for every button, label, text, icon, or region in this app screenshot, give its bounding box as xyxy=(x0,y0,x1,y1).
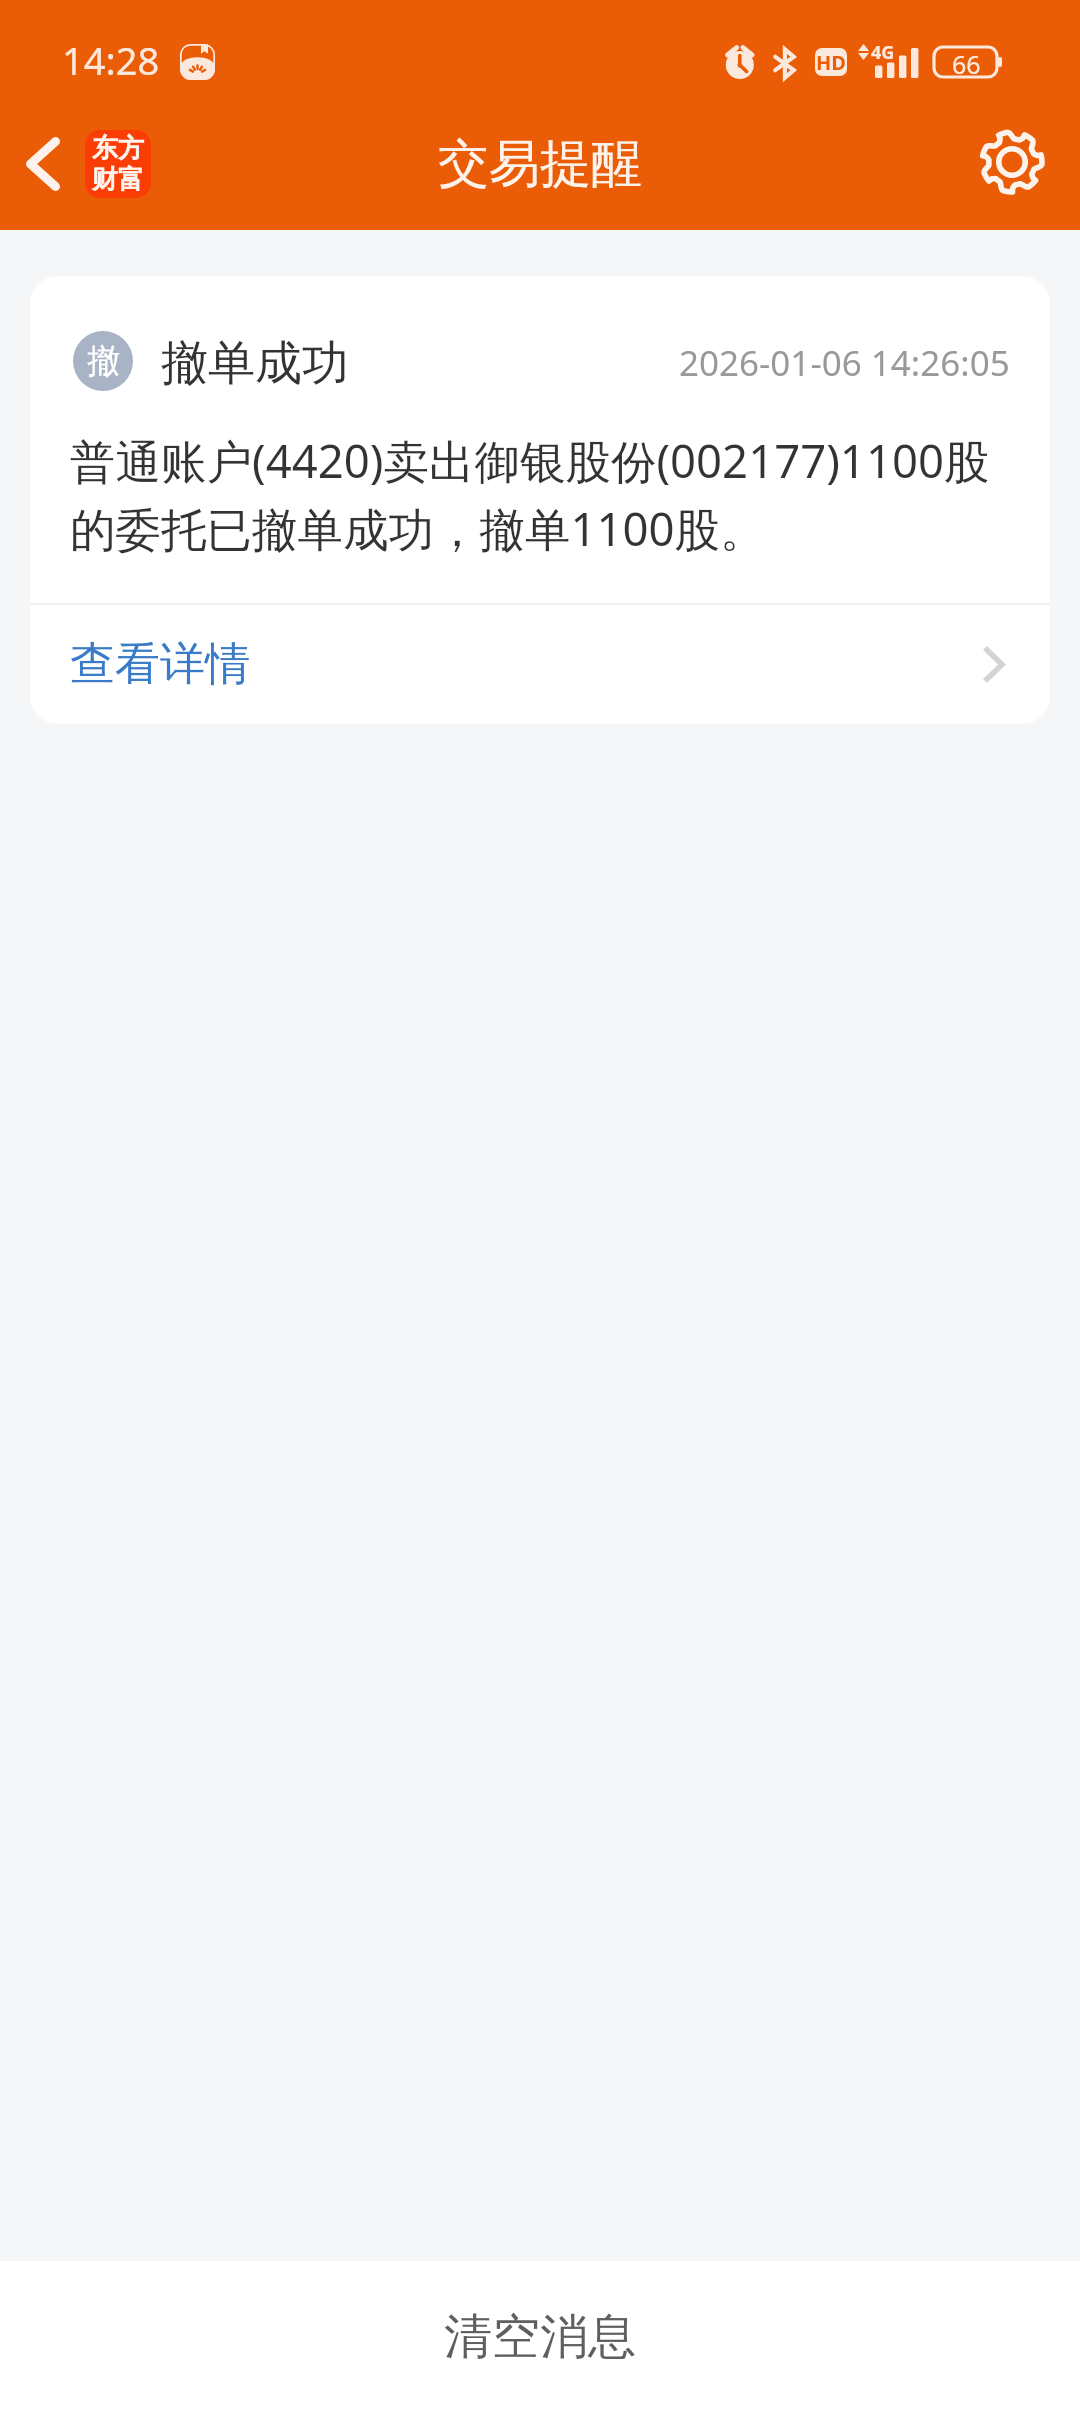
staticText: HD xyxy=(816,49,846,76)
staticText: 66 xyxy=(952,47,981,77)
staticText: 清空消息 xyxy=(444,2307,636,2367)
staticText: 撤单成功 xyxy=(161,334,349,393)
staticText: 东方 财富 xyxy=(92,132,144,196)
staticText: 撤 xyxy=(87,340,120,382)
button[interactable]: 清空消息 xyxy=(0,2261,1080,2412)
staticText: 14:28 xyxy=(62,34,160,86)
button[interactable]: Back xyxy=(1,111,85,217)
staticText: 普通账户(4420)卖出御银股份(002177)1100股的委托已撤单成功，撤单… xyxy=(70,429,1010,559)
button[interactable]: Settings xyxy=(960,108,1064,216)
button[interactable]: East Money xyxy=(85,130,151,198)
staticText: 交易提醒 xyxy=(438,132,642,196)
staticText: 查看详情 xyxy=(70,636,250,693)
staticText: 2026-01-06 14:26:05 xyxy=(679,339,1010,387)
staticText: 4G xyxy=(871,40,895,65)
button[interactable]: 查看详情 xyxy=(30,605,1050,724)
